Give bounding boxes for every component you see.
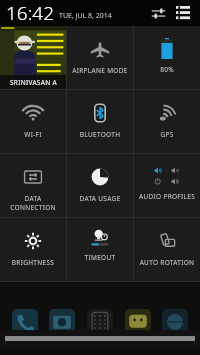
button[interactable]: Data usage xyxy=(67,154,133,217)
button[interactable]: Audio profiles xyxy=(134,154,200,217)
staticText: BRIGHTNESS xyxy=(1,258,65,267)
staticText: TUE, JUL 8, 2014 xyxy=(59,11,112,21)
staticText: 80% xyxy=(135,65,199,74)
button[interactable]: Brightness xyxy=(0,218,66,281)
staticText: BLUETOOTH xyxy=(68,130,132,139)
button[interactable]: Wi-Fi xyxy=(0,90,66,153)
staticText: SRINIVASAN A xyxy=(10,78,57,87)
staticText: TIMEOUT xyxy=(68,253,132,262)
button[interactable]: App xyxy=(162,309,188,335)
staticText: AUDIO PROFILES xyxy=(135,192,199,201)
staticText: DATA CONNECTION xyxy=(1,194,65,212)
button[interactable]: Battery 80 percent xyxy=(134,26,200,89)
button[interactable]: Auto rotation xyxy=(134,218,200,281)
button[interactable]: User profile xyxy=(0,26,66,89)
staticText: AUTO ROTATION xyxy=(135,258,199,267)
staticText: GPS xyxy=(135,130,199,139)
button[interactable]: App xyxy=(87,309,113,335)
button[interactable]: Notifications list xyxy=(173,3,193,23)
button[interactable]: Screen timeout xyxy=(67,218,133,281)
staticText: 16:42 xyxy=(6,0,55,26)
button[interactable]: Bluetooth xyxy=(67,90,133,153)
button[interactable]: Airplane mode xyxy=(67,26,133,89)
button[interactable]: App xyxy=(125,309,151,335)
button[interactable]: App xyxy=(12,309,38,335)
button[interactable]: Settings xyxy=(148,3,168,23)
button[interactable]: GPS xyxy=(134,90,200,153)
staticText: AIRPLANE MODE xyxy=(68,66,132,75)
button[interactable]: App xyxy=(49,309,75,335)
staticText: WI-FI xyxy=(1,130,65,139)
button[interactable]: Data connection xyxy=(0,154,66,217)
staticText: DATA USAGE xyxy=(68,194,132,203)
